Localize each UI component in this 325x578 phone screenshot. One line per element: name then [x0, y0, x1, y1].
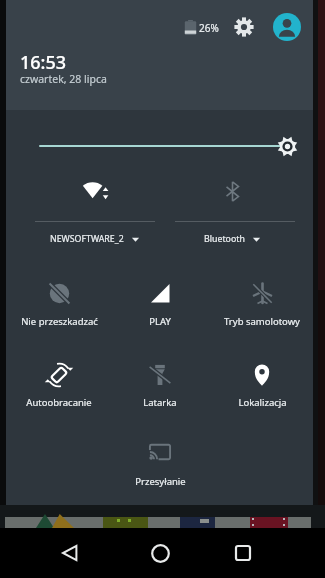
button[interactable] [9, 347, 109, 417]
button[interactable] [9, 265, 109, 335]
button[interactable] [273, 13, 301, 41]
staticText: Przesyłanie [135, 475, 186, 488]
button[interactable] [110, 347, 210, 417]
button[interactable] [110, 425, 210, 495]
button[interactable] [26, 132, 306, 160]
button[interactable] [110, 265, 210, 335]
button[interactable] [130, 538, 190, 568]
staticText: czwartek, 28 lipca [20, 72, 107, 86]
button[interactable] [212, 347, 312, 417]
staticText: Bluetooth [204, 233, 245, 245]
button[interactable] [35, 170, 155, 250]
staticText: PLAY [149, 315, 171, 328]
button[interactable]: NEWSOFTWARE_2 [20, 231, 170, 247]
staticText: Nie przeszkadzać [21, 315, 98, 328]
button[interactable]: Bluetooth [157, 231, 307, 247]
staticText: Latarka [143, 396, 177, 409]
staticText: 16:53 [20, 50, 67, 75]
button[interactable] [40, 538, 100, 568]
button[interactable] [212, 265, 312, 335]
button[interactable] [234, 17, 254, 37]
button[interactable] [213, 538, 273, 568]
staticText: Tryb samolotowy [224, 315, 300, 328]
staticText: 26% [199, 21, 219, 35]
staticText: Lokalizacja [238, 396, 287, 409]
button[interactable] [175, 170, 295, 250]
staticText: NEWSOFTWARE_2 [50, 233, 124, 245]
staticText: Autoobracanie [26, 396, 92, 409]
